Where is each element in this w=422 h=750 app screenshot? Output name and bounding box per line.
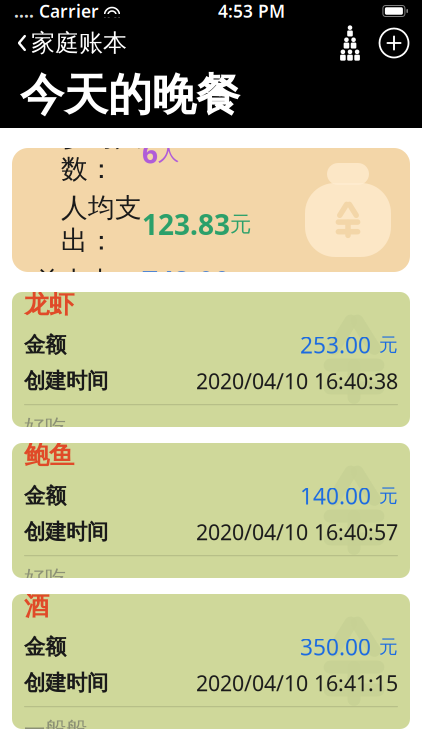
staticText: 创建时间	[24, 670, 108, 696]
staticText: 总支出：	[34, 265, 142, 298]
staticText: 140.00	[300, 481, 371, 511]
button[interactable]: 参与成员	[328, 23, 372, 63]
staticText: 龙虾	[24, 289, 74, 320]
staticText: 元	[379, 484, 398, 507]
staticText: 2020/04/10 16:41:15	[196, 669, 398, 697]
staticText: 2020/04/10 16:40:38	[196, 367, 398, 395]
staticText: 一般般	[24, 716, 87, 742]
button[interactable]: 鲍鱼	[12, 443, 410, 578]
staticText: 4:53 PM	[218, 0, 285, 22]
staticText: 123.83	[142, 206, 230, 243]
staticText: 参与人数：	[61, 120, 142, 185]
staticText: Carrier	[34, 0, 104, 22]
staticText: 金额	[24, 332, 66, 358]
staticText: 酒	[24, 591, 49, 622]
staticText: 元	[379, 635, 398, 658]
button[interactable]: 酒	[12, 594, 410, 729]
staticText: 金额	[24, 483, 66, 509]
staticText: 创建时间	[24, 368, 108, 394]
staticText: 好吃	[24, 414, 66, 440]
button[interactable]: 添加支出	[372, 23, 416, 63]
staticText: 2020/04/10 16:40:57	[196, 518, 398, 546]
staticText: ....	[14, 0, 34, 22]
staticText: 743.00	[142, 263, 230, 300]
staticText: 人	[158, 140, 179, 166]
staticText: 好吃	[24, 565, 66, 591]
staticText: 创建时间	[24, 519, 108, 545]
staticText: 今天的晚餐	[20, 68, 240, 122]
staticText: 元	[230, 211, 251, 237]
staticText: 金额	[24, 634, 66, 660]
staticText: 350.00	[300, 632, 371, 662]
staticText: 鲍鱼	[24, 440, 74, 471]
staticText: 元	[379, 333, 398, 356]
button[interactable]: 龙虾	[12, 292, 410, 427]
button[interactable]: 家庭账本	[6, 22, 137, 64]
staticText: 人均支出：	[61, 191, 142, 257]
staticText: 元	[230, 268, 251, 295]
staticText: 6	[142, 134, 158, 171]
staticText: 253.00	[300, 330, 371, 360]
staticText: 家庭账本	[31, 28, 127, 58]
